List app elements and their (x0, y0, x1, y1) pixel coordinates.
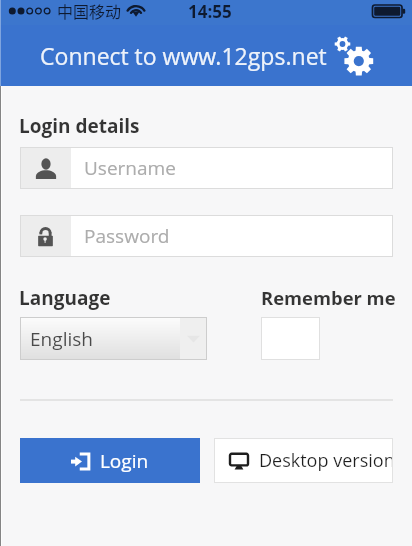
staticText: English (30, 326, 180, 352)
button[interactable]: Login (20, 438, 200, 483)
button[interactable]: English (20, 317, 207, 360)
button[interactable]: Settings (333, 32, 377, 76)
button[interactable]: Desktop version (214, 438, 393, 483)
button[interactable]: Password (20, 215, 393, 257)
staticText: Login (100, 448, 149, 474)
staticText: Desktop version (259, 448, 393, 473)
staticText: Connect to www.12gps.net (40, 40, 327, 71)
button[interactable]: Username (20, 147, 393, 189)
staticText: Remember me (261, 285, 396, 310)
button[interactable]: Remember me (261, 317, 320, 360)
staticText: 中国移动 (57, 0, 122, 22)
staticText: Username (84, 155, 176, 181)
staticText: Password (84, 223, 170, 249)
staticText: Login details (19, 113, 140, 139)
staticText: 14:55 (188, 0, 232, 23)
staticText: Language (19, 285, 111, 311)
